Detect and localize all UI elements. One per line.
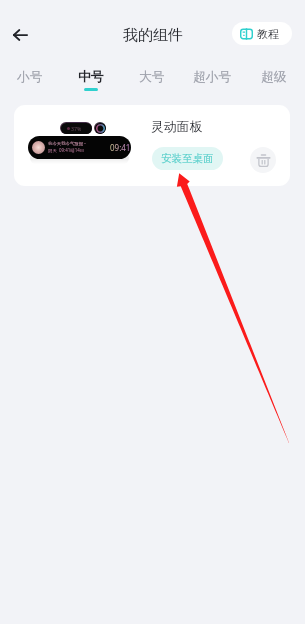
button[interactable]: 教程	[232, 22, 292, 45]
staticText: 杭今天我今气预报 -	[48, 140, 86, 146]
staticText: 中号	[78, 69, 104, 85]
button[interactable]: 中号	[60, 69, 121, 91]
button[interactable]: Back	[6, 20, 35, 49]
button[interactable]: 小号	[0, 69, 60, 88]
staticText: 灵动面板	[151, 119, 203, 135]
button[interactable]: 安装至桌面	[152, 147, 223, 170]
staticText: 超级	[261, 69, 287, 85]
staticText: 我的组件	[123, 26, 183, 45]
staticText: 37%	[71, 125, 82, 132]
button[interactable]: 超小号	[182, 69, 243, 88]
staticText: 大号	[139, 69, 165, 85]
button[interactable]: Delete	[250, 147, 276, 173]
staticText: 教程	[257, 27, 280, 41]
button[interactable]: 大号	[121, 69, 182, 88]
button[interactable]: 超级	[243, 69, 304, 88]
staticText: 超小号	[193, 69, 232, 85]
staticText: 安装至桌面	[161, 152, 214, 165]
staticText: 09:41	[110, 142, 131, 153]
staticText: 小号	[17, 69, 43, 85]
staticText: 阴天 09:41晴14日	[48, 147, 85, 153]
